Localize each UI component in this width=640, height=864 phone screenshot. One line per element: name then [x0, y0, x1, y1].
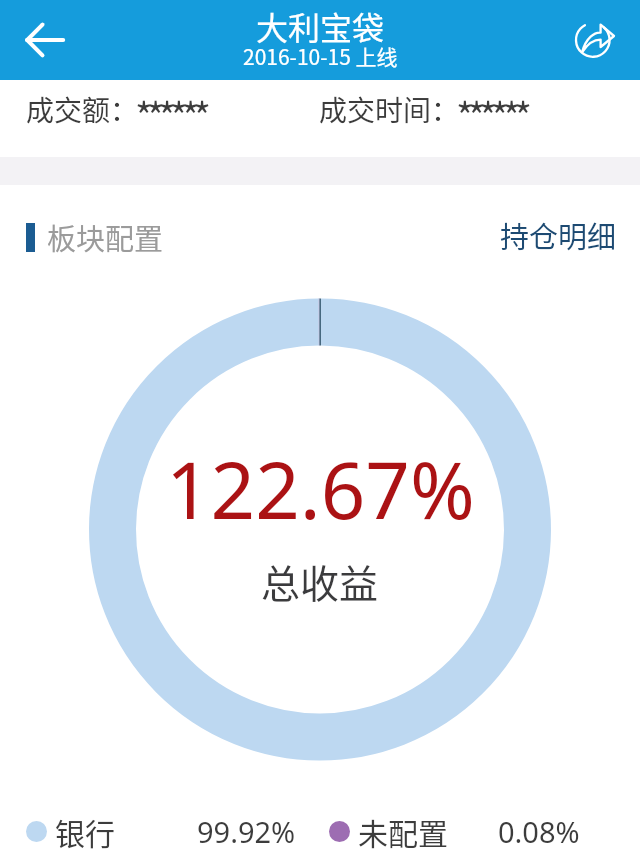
staticText: ****** — [456, 87, 526, 142]
staticText: 总收益 — [261, 553, 379, 609]
staticText: 持仓明细 — [500, 214, 617, 256]
button[interactable]: 未配置 — [303, 807, 586, 856]
button[interactable]: 板块配置 — [0, 210, 172, 264]
staticText: 银行 — [55, 810, 115, 853]
staticText: 未配置 — [358, 810, 448, 853]
staticText: 2016-10-15 上线 — [243, 41, 398, 71]
staticText: 板块配置 — [47, 216, 164, 258]
staticText: 0.08% — [498, 812, 580, 851]
staticText: 成交时间： — [319, 89, 460, 130]
staticText: 122.67% — [166, 436, 475, 542]
button[interactable]: Back — [0, 0, 90, 80]
staticText: 大利宝袋 — [256, 3, 385, 49]
button[interactable]: Share — [554, 0, 640, 80]
staticText: 成交额： — [26, 89, 139, 130]
staticText: 99.92% — [197, 812, 296, 851]
button[interactable]: 持仓明细 — [484, 210, 640, 264]
button[interactable]: 银行 — [0, 807, 302, 856]
staticText: ****** — [135, 87, 205, 142]
